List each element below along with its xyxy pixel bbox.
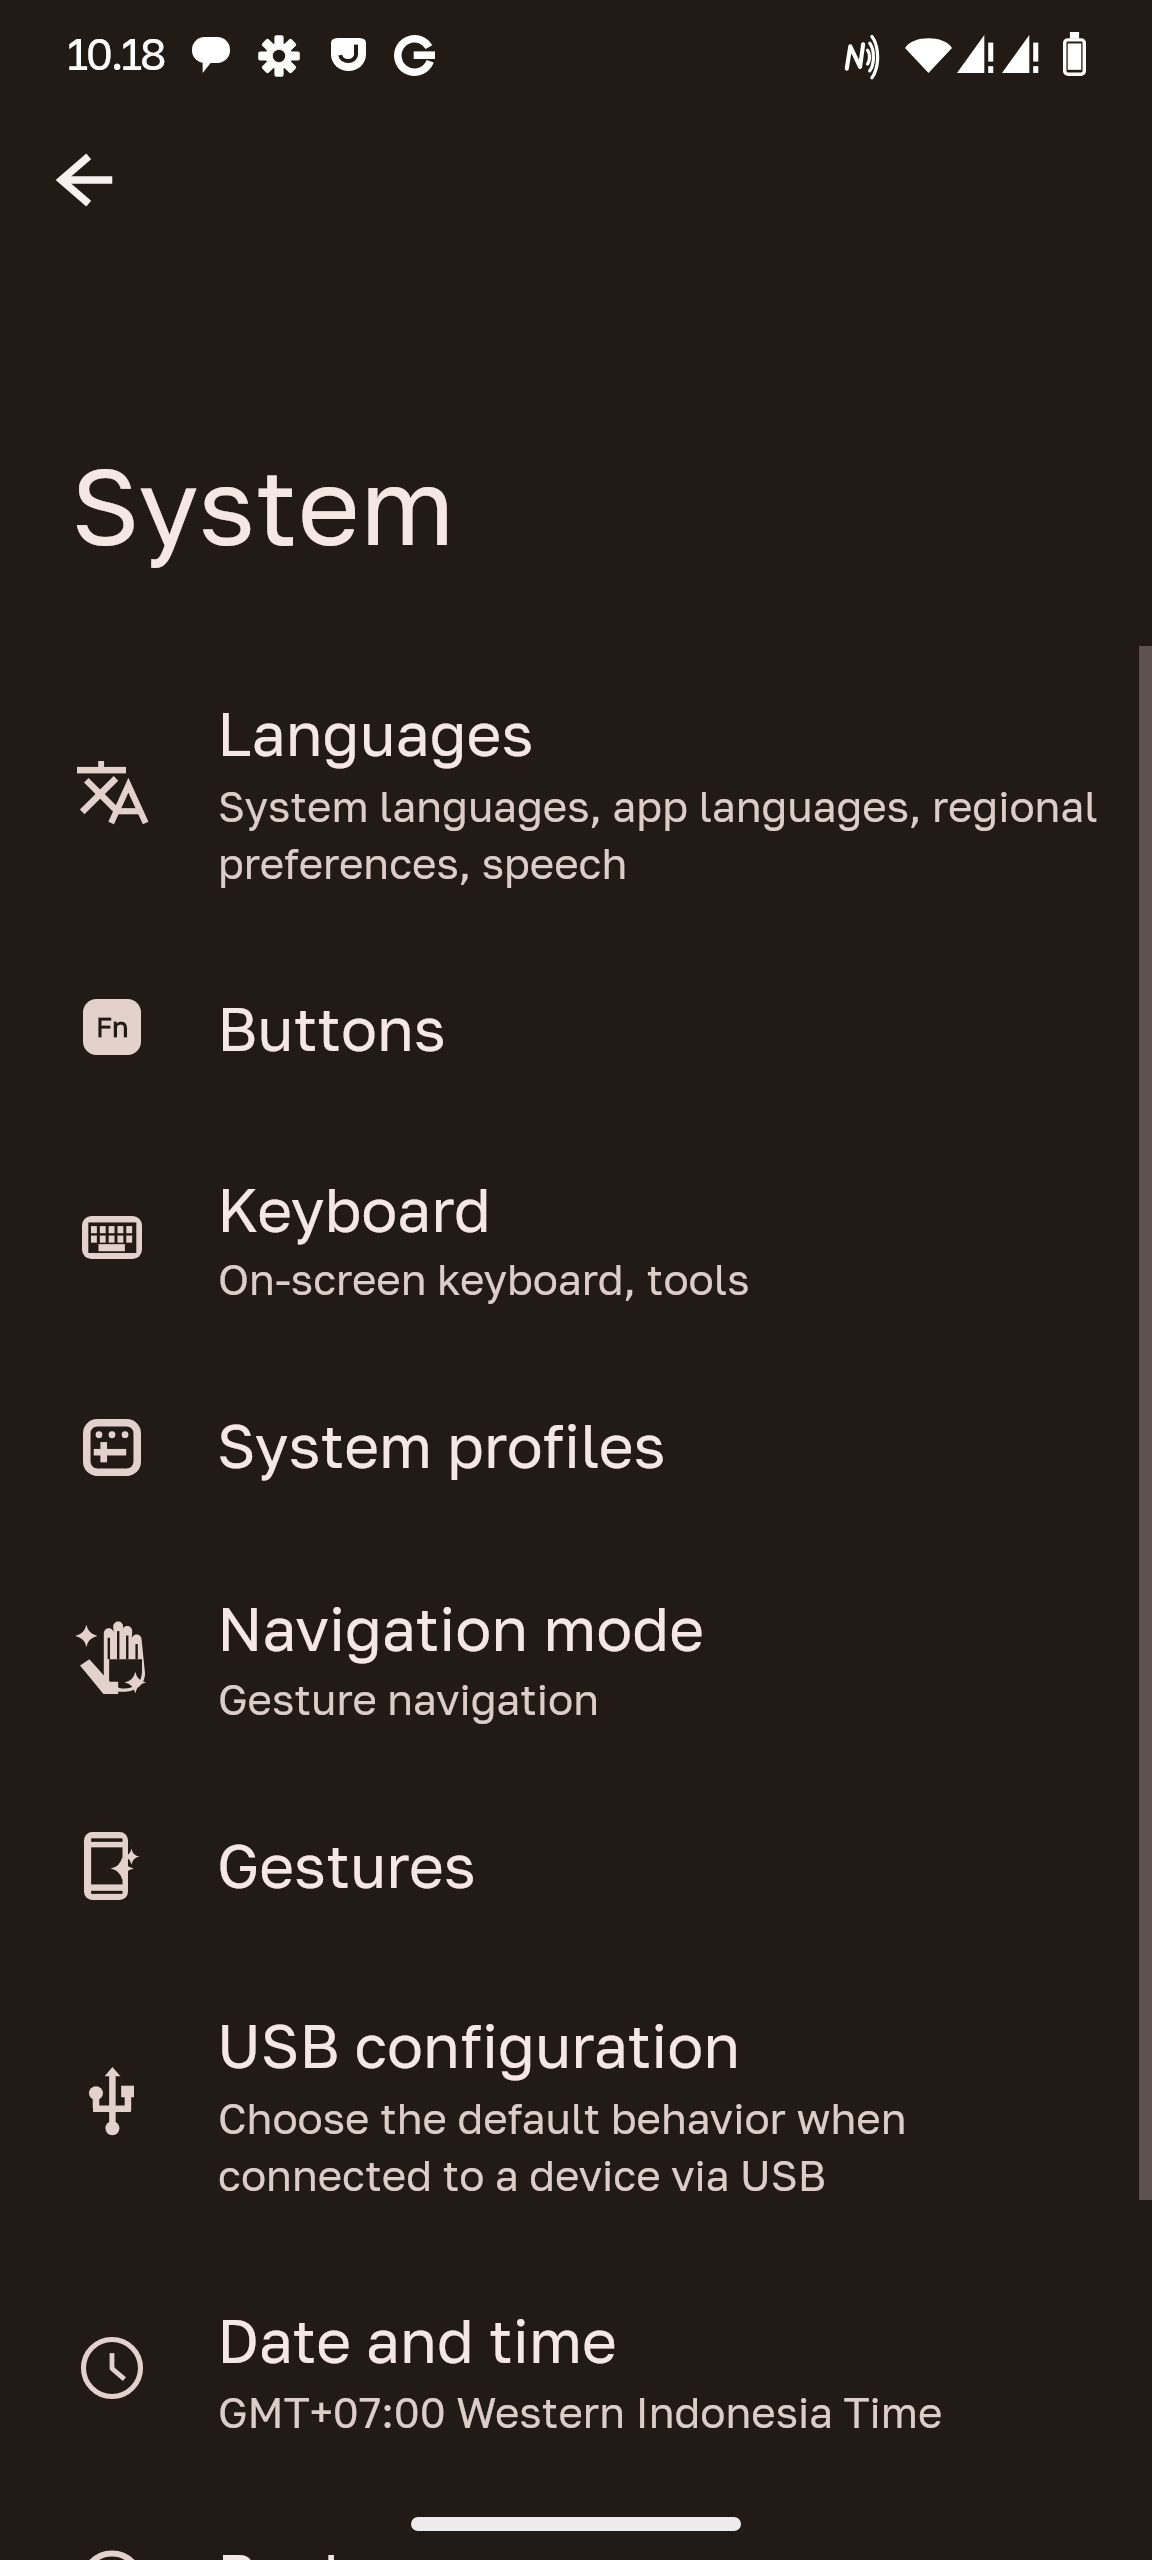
button[interactable]: Fn [0,950,1152,1131]
staticText: USB configuration [217,2009,741,2081]
staticText: Navigation mode [217,1592,704,1664]
staticText: Buttons [217,992,446,1064]
staticText: Backup [217,2539,431,2560]
staticText: System profiles [217,1409,666,1481]
button[interactable]: Gestures [0,1787,1152,1967]
staticText: Languages [217,697,534,769]
staticText: System [71,440,455,568]
staticText: Fn [96,1011,129,1043]
staticText: System languages, app languages, regiona… [218,775,1098,889]
button[interactable]: System profiles [0,1367,1152,1550]
staticText: Gesture navigation [218,1668,599,1725]
staticText: 10.18 [67,27,164,80]
staticText: Gestures [217,1829,476,1901]
button[interactable]: Backup [0,2498,1152,2560]
button[interactable]: Back [38,132,134,228]
staticText: On-screen keyboard, tools [218,1248,750,1305]
staticText: Date and time [217,2304,617,2376]
button[interactable]: Keyboard [0,1131,1152,1367]
staticText: Keyboard [217,1173,491,1245]
button[interactable]: Languages [0,655,1152,950]
button[interactable]: Navigation mode [0,1550,1152,1787]
staticText: Choose the default behavior when connect… [218,2087,907,2201]
button[interactable]: Date and time [0,2262,1152,2498]
staticText: GMT+07:00 Western Indonesia Time [218,2381,943,2438]
button[interactable]: USB configuration [0,1967,1152,2262]
